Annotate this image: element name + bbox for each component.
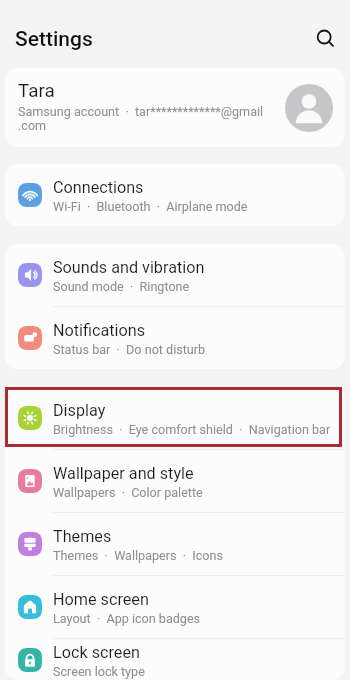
staticText: Connections — [53, 178, 144, 197]
staticText: Display — [53, 401, 106, 420]
button[interactable]: Lock screen — [5, 639, 345, 680]
staticText: Wi-Fi · Bluetooth · Airplane mode — [53, 199, 248, 214]
staticText: Tara — [18, 80, 55, 102]
staticText: Sounds and vibration — [53, 258, 205, 277]
staticText: Sound mode · Ringtone — [53, 279, 190, 294]
staticText: Lock screen — [53, 643, 140, 662]
button[interactable]: Profile picture — [285, 84, 333, 132]
staticText: Themes — [53, 527, 112, 546]
button[interactable]: Display — [5, 387, 345, 449]
button[interactable]: Sounds and vibration — [5, 244, 345, 306]
staticText: Status bar · Do not disturb — [53, 342, 206, 357]
staticText: Wallpaper and style — [53, 464, 194, 483]
staticText: Wallpapers · Color palette — [53, 485, 203, 500]
staticText: Screen lock type — [53, 664, 145, 679]
staticText: Layout · App icon badges — [53, 611, 201, 626]
staticText: Samsung account · tar*************@gmail… — [18, 104, 264, 134]
button[interactable]: Search — [312, 25, 340, 53]
staticText: Notifications — [53, 321, 146, 340]
staticText: Themes · Wallpapers · Icons — [53, 548, 223, 563]
button[interactable]: Tara — [5, 68, 345, 147]
button[interactable]: Home screen — [5, 576, 345, 638]
button[interactable]: Wallpaper and style — [5, 450, 345, 512]
staticText: Brightness · Eye comfort shield · Naviga… — [53, 422, 331, 437]
button[interactable]: Connections — [5, 164, 345, 226]
button[interactable]: Notifications — [5, 307, 345, 369]
staticText: Home screen — [53, 590, 149, 609]
button[interactable]: Themes — [5, 513, 345, 575]
staticText: Settings — [15, 27, 93, 52]
